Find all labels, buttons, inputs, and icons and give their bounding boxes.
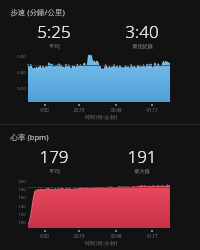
staticText: 9:50	[40, 107, 49, 113]
staticText: 180	[18, 187, 26, 193]
staticText: 191	[127, 145, 157, 168]
staticText: 時間 (時:分:秒)	[85, 114, 117, 121]
staticText: 100	[18, 220, 26, 226]
staticText: 30:48	[110, 233, 122, 239]
staticText: 最佳紀錄	[132, 43, 153, 50]
staticText: 41:17	[146, 107, 158, 113]
button[interactable]: 步速 (分鐘/公里)	[0, 0, 200, 124]
other: 心率 (bpm)	[28, 179, 170, 228]
staticText: 20:19	[73, 107, 85, 113]
button[interactable]: 心率 (bpm)	[0, 125, 200, 250]
staticText: 3:40	[125, 20, 159, 43]
staticText: 140	[18, 204, 26, 210]
staticText: 30:48	[110, 107, 122, 113]
staticText: 平均	[49, 43, 60, 50]
staticText: 120	[18, 212, 26, 218]
staticText: 200	[18, 179, 26, 185]
staticText: 最大值	[134, 168, 150, 175]
staticText: 步速 (分鐘/公里)	[10, 7, 65, 17]
staticText: 時間 (時:分:秒)	[85, 240, 117, 247]
staticText: 平均	[49, 168, 60, 175]
staticText: 179	[39, 145, 69, 168]
staticText: 41:17	[146, 233, 158, 239]
staticText: 160	[18, 195, 26, 201]
staticText: 5:25	[37, 20, 71, 43]
staticText: 6:40	[17, 70, 26, 76]
staticText: 0:00	[17, 54, 26, 60]
staticText: 心率 (bpm)	[10, 132, 49, 142]
staticText: 20:19	[73, 233, 85, 239]
other: 步速 (分鐘/公里)	[28, 54, 170, 102]
staticText: 9:20	[17, 86, 26, 92]
staticText: 9:50	[40, 233, 49, 239]
